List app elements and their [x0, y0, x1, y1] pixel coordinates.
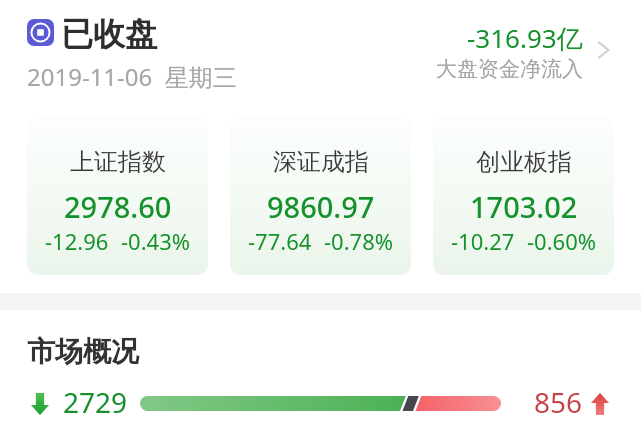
staticText: 9860.97 [267, 187, 375, 226]
button[interactable]: -316.93亿 [428, 20, 583, 82]
button[interactable]: Market breadth 2729 down 856 up [20, 380, 621, 428]
staticText: 2729 [63, 383, 128, 421]
staticText: -316.93亿 [467, 20, 583, 56]
button[interactable]: 上证指数 [27, 117, 208, 275]
staticText: 已收盘 [61, 14, 157, 54]
staticText: 2978.60 [64, 187, 172, 226]
staticText: -10.27 [451, 226, 515, 256]
staticText: -0.60% [527, 226, 597, 256]
staticText: -0.78% [324, 226, 394, 256]
staticText: 856 [534, 383, 583, 421]
staticText: -77.64 [248, 226, 312, 256]
staticText: 创业板指 [476, 147, 572, 177]
staticText: 2019-11-06 星期三 [27, 60, 237, 93]
staticText: 上证指数 [70, 147, 166, 177]
button[interactable]: More fund flow [593, 38, 617, 62]
button[interactable]: 深证成指 [230, 117, 411, 275]
staticText: 深证成指 [273, 147, 369, 177]
staticText: 大盘资金净流入 [436, 56, 583, 82]
button[interactable]: 创业板指 [433, 117, 614, 275]
staticText: -0.43% [121, 226, 191, 256]
button[interactable]: 已收盘 [27, 14, 157, 54]
staticText: -12.96 [45, 226, 109, 256]
staticText: 市场概况 [27, 334, 139, 369]
staticText: 1703.02 [470, 187, 578, 226]
